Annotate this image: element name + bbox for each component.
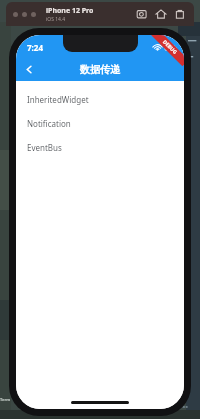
staticText: 7:24 [27, 42, 43, 53]
button[interactable]: Back [16, 57, 42, 81]
staticText: DEBUG [161, 39, 179, 56]
button[interactable]: Screenshot [136, 8, 148, 20]
button[interactable]: EventBus [16, 135, 184, 159]
button[interactable]: Notification [16, 111, 184, 135]
staticText: 数据传递 [80, 63, 120, 76]
button[interactable] [31, 12, 36, 17]
button[interactable]: Record [174, 8, 186, 20]
staticText: ▪▪▪▪▪▪ [172, 404, 189, 409]
staticText: iPhone 12 Pro [46, 6, 94, 16]
button[interactable]: InheritedWidget [16, 87, 184, 111]
staticText: Term [0, 397, 11, 402]
staticText: EventBus [27, 142, 62, 153]
button[interactable] [22, 12, 27, 17]
button[interactable] [13, 12, 18, 17]
staticText: iOS 14.4 [46, 16, 66, 23]
button[interactable]: Home [155, 8, 167, 20]
staticText: InheritedWidget [27, 94, 89, 105]
staticText: Notification [27, 118, 71, 129]
